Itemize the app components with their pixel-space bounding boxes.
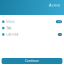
button[interactable]: Tasks <box>0 25 64 31</box>
staticText: New <box>57 21 60 23</box>
staticText: Calendar <box>6 33 18 36</box>
staticText: Tasks <box>6 26 11 30</box>
button[interactable]: Continue <box>2 58 62 64</box>
button[interactable]: Inbox <box>0 18 64 25</box>
staticText: Acme <box>49 2 60 8</box>
button[interactable]: Calendar <box>0 31 64 38</box>
staticText: Continue <box>25 59 39 63</box>
staticText: Inbox <box>6 20 14 23</box>
